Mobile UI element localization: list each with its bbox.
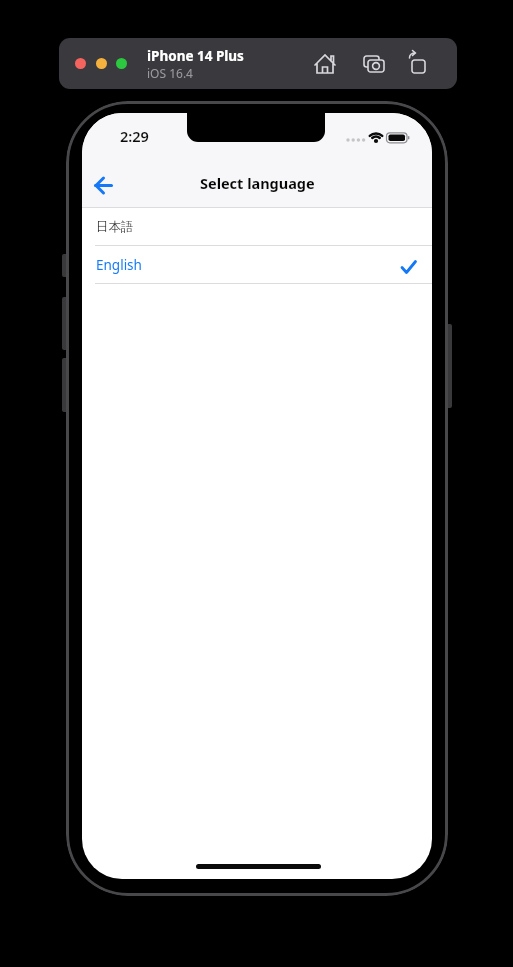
button[interactable] (75, 58, 86, 69)
staticText: 日本語 (96, 219, 134, 235)
button[interactable] (88, 171, 122, 201)
button[interactable] (356, 46, 392, 82)
button[interactable]: 日本語 (82, 208, 432, 245)
button[interactable] (400, 46, 436, 82)
staticText: iOS 16.4 (147, 65, 193, 81)
staticText: iPhone 14 Plus (147, 47, 244, 65)
staticText: Select language (200, 173, 315, 193)
button[interactable] (116, 58, 127, 69)
button[interactable] (307, 46, 343, 82)
staticText: English (96, 256, 142, 274)
button[interactable] (96, 58, 107, 69)
button[interactable]: English (82, 246, 432, 283)
staticText: 2:29 (120, 126, 149, 146)
